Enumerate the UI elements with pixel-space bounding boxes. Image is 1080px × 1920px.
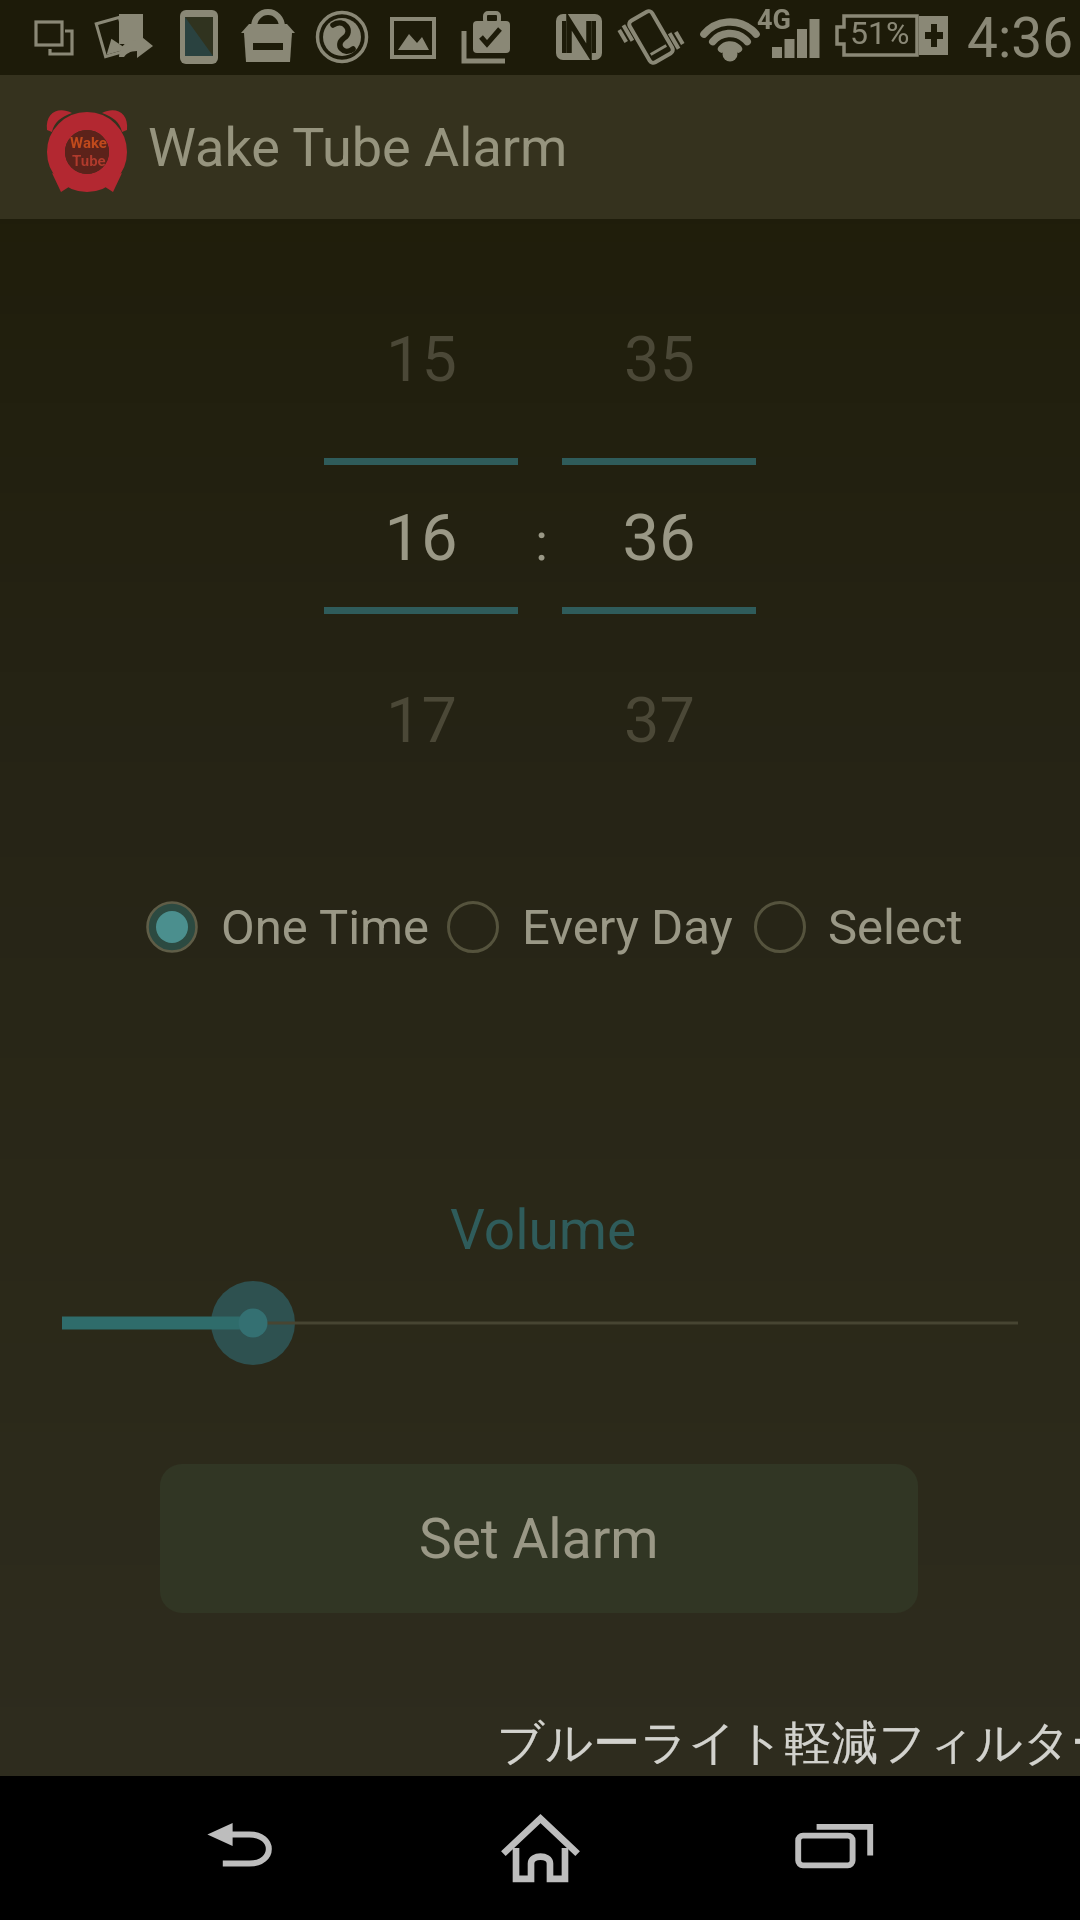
button[interactable]: 15 (331, 300, 511, 420)
staticText: 15 (386, 323, 457, 397)
staticText: 51% (850, 14, 910, 52)
staticText: Wake Tube Alarm (148, 116, 568, 179)
staticText: One Time (221, 899, 430, 956)
staticText: 35 (624, 323, 695, 397)
button[interactable]: 37 (569, 661, 749, 781)
button[interactable]: : (451, 482, 631, 602)
staticText: 4:36 (967, 6, 1074, 70)
staticText: 4G (757, 4, 791, 36)
button[interactable]: Home (470, 1776, 610, 1920)
button[interactable]: Volume slider (0, 1263, 1080, 1383)
button[interactable]: Set Alarm (160, 1464, 918, 1613)
button[interactable]: Volume (450, 1194, 637, 1266)
staticText: ブルーライト軽減フィルター (497, 1714, 1080, 1773)
staticText: 36 (622, 500, 696, 576)
button[interactable]: 16 (331, 478, 511, 598)
staticText: Tube (72, 152, 106, 170)
button[interactable]: Back (171, 1776, 311, 1920)
staticText: 17 (386, 684, 457, 758)
button[interactable]: Select (747, 892, 963, 962)
staticText: 16 (384, 500, 458, 576)
staticText: 37 (624, 684, 695, 758)
staticText: Every Day (522, 899, 733, 956)
staticText: Wake (70, 134, 107, 152)
button[interactable]: Every Day (440, 892, 733, 962)
staticText: Volume (450, 1198, 637, 1262)
button[interactable]: 17 (331, 661, 511, 781)
staticText: Select (828, 899, 963, 956)
button[interactable]: One Time (139, 892, 430, 962)
staticText: : (535, 512, 548, 573)
button[interactable]: 35 (569, 300, 749, 420)
staticText: Set Alarm (419, 1507, 659, 1571)
button[interactable]: 36 (569, 478, 749, 598)
button[interactable]: Recents (765, 1776, 905, 1920)
